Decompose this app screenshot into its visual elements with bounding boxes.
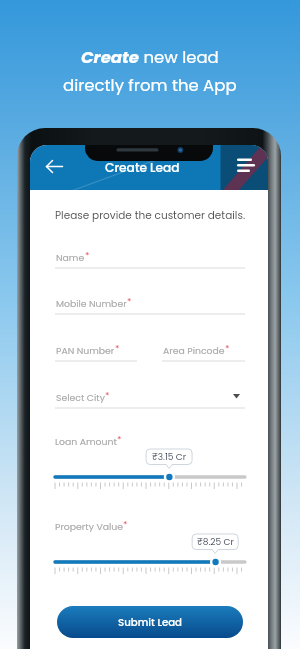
staticText: Area Pincode <box>163 344 225 357</box>
staticText: Loan Amount <box>55 435 117 448</box>
button[interactable]: Mobile Number <box>55 292 245 315</box>
staticText: Submit Lead <box>118 615 183 629</box>
staticText: Name <box>56 251 85 264</box>
staticText: * <box>85 250 90 263</box>
staticText: Select City <box>56 391 105 404</box>
staticText: Property Value <box>55 520 123 533</box>
staticText: ₹3.15 Cr <box>152 451 187 464</box>
button[interactable]: Select City <box>55 386 245 409</box>
staticText: * <box>123 519 128 532</box>
staticText: * <box>127 296 132 309</box>
staticText: directly from the App <box>63 74 237 97</box>
staticText: PAN Number <box>56 344 115 357</box>
button[interactable]: Back <box>45 157 64 176</box>
staticText: * <box>117 434 122 447</box>
button[interactable]: Name <box>55 246 245 269</box>
button[interactable]: PAN Number <box>55 339 137 362</box>
button[interactable]: Submit Lead <box>57 606 243 638</box>
staticText: Mobile Number <box>56 297 127 310</box>
staticText: * <box>105 390 110 403</box>
staticText: new lead <box>139 46 219 69</box>
button[interactable]: Area Pincode <box>162 339 245 362</box>
staticText: * <box>115 343 120 356</box>
staticText: * <box>225 343 230 356</box>
staticText: Please provide the customer details. <box>55 208 246 223</box>
button[interactable]: Menu <box>236 157 258 175</box>
staticText: ₹8.25 Cr <box>197 536 234 549</box>
staticText: Create Lead <box>105 159 180 176</box>
staticText: Create <box>81 46 139 69</box>
